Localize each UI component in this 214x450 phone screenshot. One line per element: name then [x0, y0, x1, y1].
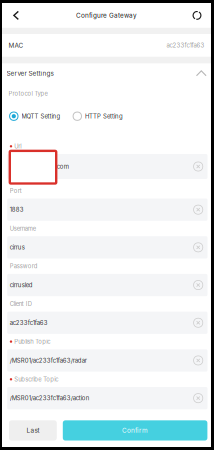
button[interactable]: Back [5, 3, 27, 27]
staticText: cirrus [10, 244, 25, 251]
button[interactable]: Confirm [63, 420, 207, 440]
staticText: MQTT Setting [22, 113, 61, 120]
staticText: ac233fc1fa63 [166, 42, 204, 49]
staticText: Configure Gateway [76, 11, 137, 19]
staticText: MAC [9, 41, 24, 49]
staticText: Url [14, 143, 21, 150]
staticText: mqtt.screenhub.com [10, 163, 69, 170]
button[interactable]: Clear Publish Topic [192, 354, 204, 367]
button[interactable]: Clear Url [192, 160, 204, 173]
staticText: ac233fc1fa63 [10, 319, 48, 326]
staticText: 1883 [10, 206, 24, 213]
button[interactable]: Refresh [186, 3, 208, 27]
staticText: Server Settings [7, 69, 54, 77]
staticText: HTTP Setting [85, 113, 123, 120]
staticText: /MSR01/ac233fc1fa63/radar [10, 357, 87, 364]
button[interactable]: Server Settings [2, 64, 211, 83]
button[interactable]: HTTP Setting [73, 112, 123, 120]
button[interactable]: Clear Username [192, 241, 204, 254]
staticText: /MSR01/ac233fc1fa63/action [10, 394, 90, 402]
staticText: cirrusled [10, 281, 33, 289]
staticText: Username [10, 225, 36, 232]
button[interactable]: Clear Subscribe Topic [192, 392, 204, 404]
staticText: Last [26, 427, 39, 434]
button[interactable]: Clear Port [192, 203, 204, 216]
staticText: Port [10, 187, 22, 194]
button[interactable]: Clear Password [192, 279, 204, 291]
button[interactable]: Clear Client ID [192, 316, 204, 329]
button[interactable]: MQTT Setting [2, 112, 61, 120]
staticText: Subscribe Topic [14, 376, 58, 383]
staticText: Confirm [122, 427, 148, 434]
button[interactable]: Last [9, 420, 57, 440]
staticText: Publish Topic [14, 338, 50, 345]
staticText: Client ID [10, 300, 32, 307]
staticText: Protocol Type [8, 90, 47, 97]
staticText: Password [10, 263, 38, 270]
